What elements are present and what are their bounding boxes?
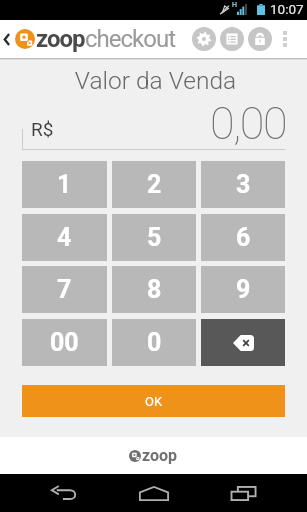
button[interactable]: OK (22, 385, 285, 417)
button[interactable]: 1 (22, 161, 107, 208)
button[interactable]: 00 (22, 319, 107, 366)
staticText: zoop (142, 446, 178, 465)
button[interactable]: 7 (22, 266, 107, 313)
button[interactable]: 0 (112, 319, 196, 366)
button[interactable]: 5 (112, 214, 196, 261)
staticText: 9 (236, 275, 251, 304)
button[interactable]: Back (45, 474, 83, 512)
staticText: OK (145, 394, 163, 409)
staticText: 2 (147, 170, 162, 199)
staticText: 5 (147, 223, 162, 252)
staticText: Valor da Venda (2, 66, 307, 95)
button[interactable]: 4 (22, 214, 107, 261)
button[interactable]: More options (274, 20, 295, 58)
button[interactable]: Delete (201, 319, 285, 366)
button[interactable]: 9 (201, 266, 285, 313)
button[interactable]: 8 (112, 266, 196, 313)
staticText: 3 (236, 170, 251, 199)
staticText: checkout (85, 25, 176, 53)
staticText: 4 (57, 223, 72, 252)
staticText: 7 (57, 275, 72, 304)
staticText: 8 (147, 275, 162, 304)
staticText: 1 (57, 170, 72, 199)
button[interactable]: Transactions (220, 27, 244, 51)
staticText: 6 (236, 223, 251, 252)
button[interactable]: 6 (201, 214, 285, 261)
button[interactable]: Back (0, 20, 14, 58)
staticText: 0 (147, 328, 162, 357)
staticText: 00 (50, 328, 79, 357)
button[interactable]: Lock (248, 27, 272, 51)
staticText: R$ (31, 118, 54, 140)
staticText: 10:07 (270, 1, 304, 17)
button[interactable]: 3 (201, 161, 285, 208)
staticText: 0,00 (210, 97, 286, 150)
staticText: zoop (36, 25, 85, 53)
button[interactable]: Settings (192, 27, 216, 51)
button[interactable]: Recent apps (226, 474, 262, 512)
staticText: H (232, 1, 237, 9)
button[interactable]: 2 (112, 161, 196, 208)
button[interactable]: Home (134, 474, 174, 512)
